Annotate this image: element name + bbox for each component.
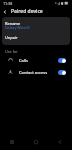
staticText: Contact access — [19, 70, 48, 75]
button[interactable]: Contact access — [0, 66, 72, 78]
button[interactable]: Unpair — [2, 33, 70, 45]
staticText: Paired device — [11, 8, 43, 15]
staticText: Use for — [5, 49, 18, 54]
button[interactable]: Calls — [0, 54, 72, 66]
button[interactable]: Back — [48, 134, 72, 150]
button[interactable]: Back — [0, 7, 10, 16]
button[interactable]: Home — [24, 134, 48, 150]
staticText: Galaxy Watch5 — [5, 25, 30, 30]
button[interactable]: Recents — [0, 134, 24, 150]
staticText: Calls — [19, 58, 28, 63]
staticText: 11:38 — [3, 1, 13, 6]
staticText: Unpair — [5, 35, 18, 40]
button[interactable]: Rename — [2, 17, 70, 33]
staticText: Rename — [5, 21, 21, 26]
